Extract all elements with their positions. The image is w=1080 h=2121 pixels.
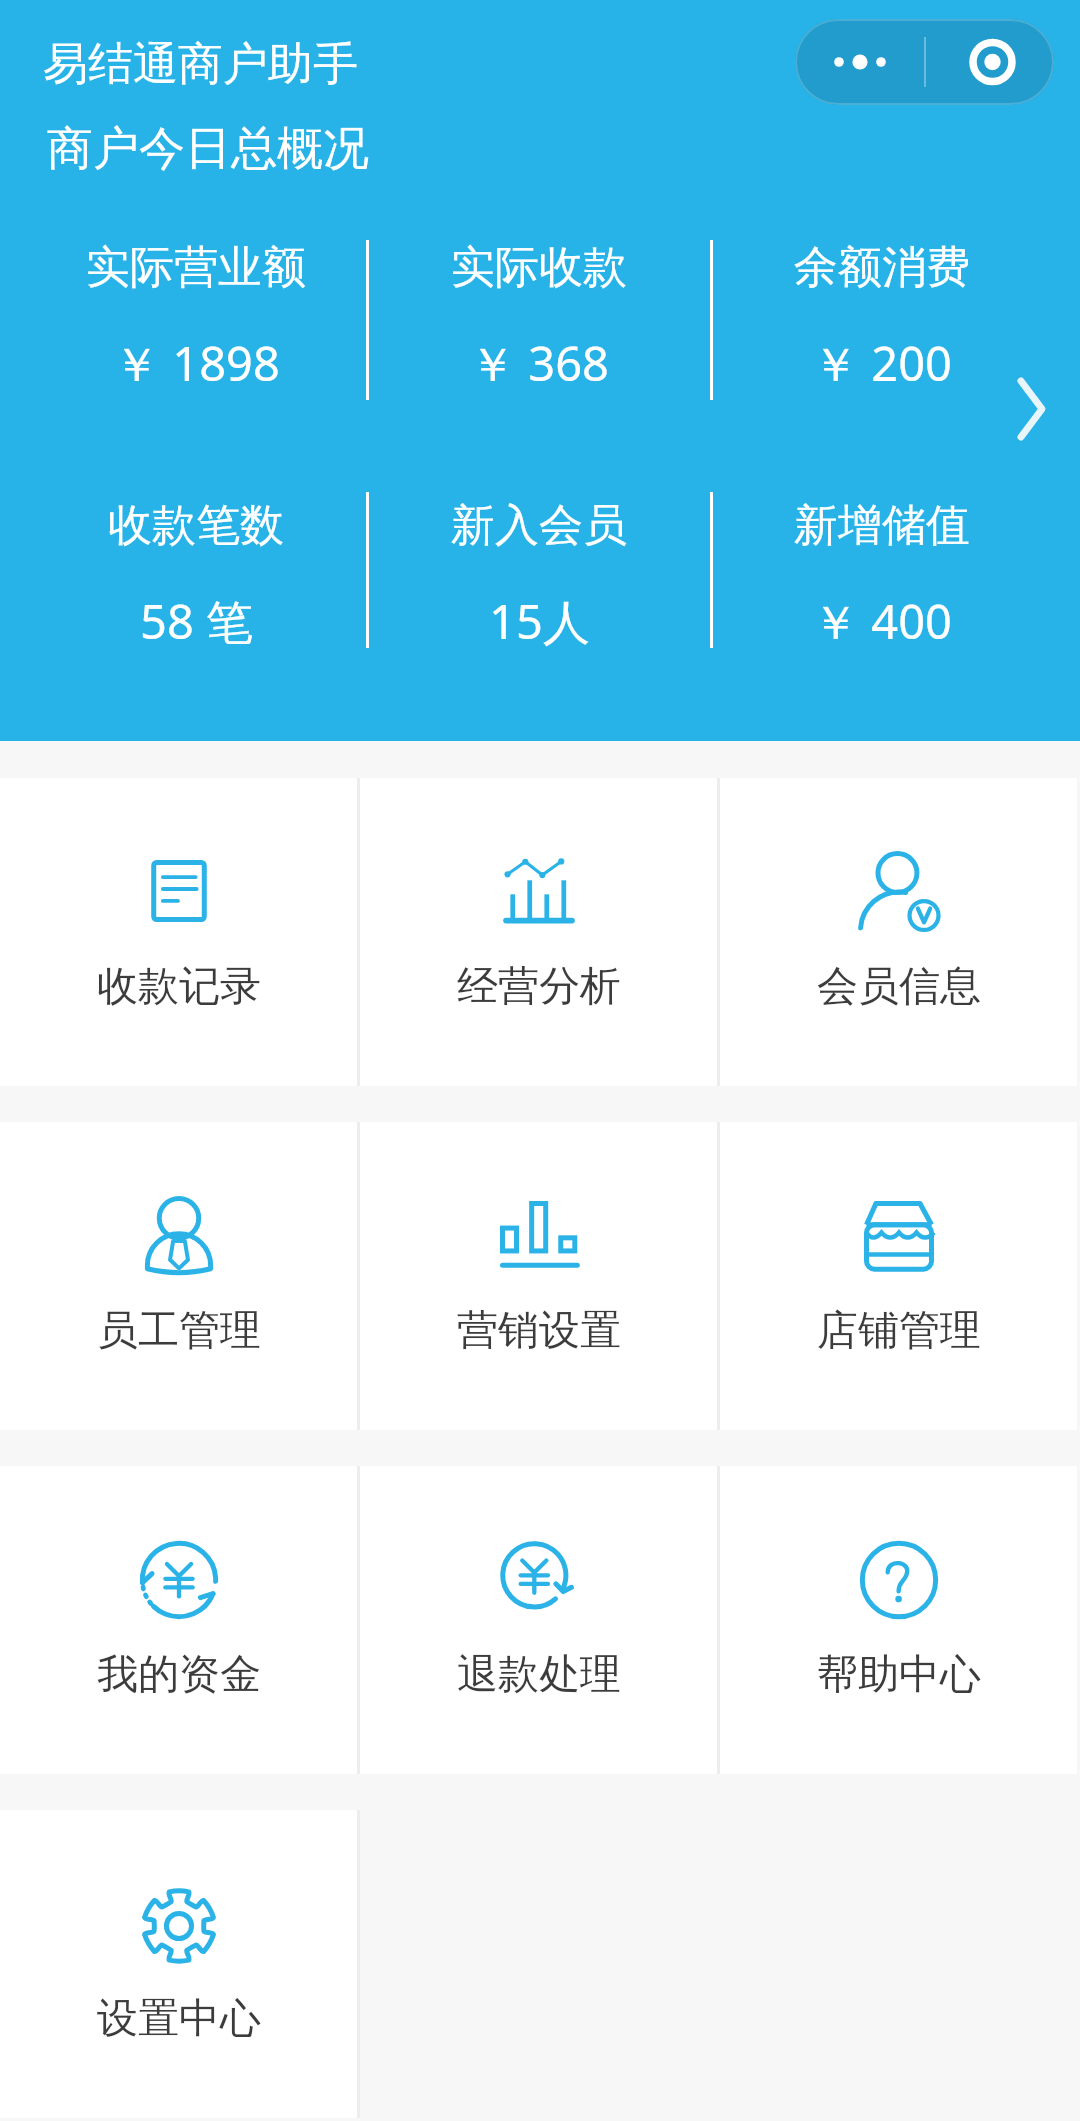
staticText: 新增储值 [794,498,970,553]
staticText: 员工管理 [97,1305,261,1357]
staticText: 我的资金 [97,1649,261,1701]
button[interactable]: 帮助中心 [720,1466,1077,1774]
staticText: 设置中心 [97,1993,261,2045]
staticText: 易结通商户助手 [43,36,358,93]
button[interactable]: 设置中心 [0,1810,357,2118]
staticText: ￥ 400 [812,589,952,653]
button[interactable]: 退款处理 [360,1466,717,1774]
button[interactable]: 员工管理 [0,1122,357,1430]
button[interactable]: 营销设置 [360,1122,717,1430]
staticText: 新入会员 [451,498,627,553]
staticText: 经营分析 [457,961,621,1013]
staticText: 收款笔数 [108,498,284,553]
staticText: 实际收款 [451,240,627,295]
staticText: 店铺管理 [817,1305,981,1357]
button[interactable]: More [1014,375,1050,443]
button[interactable]: 经营分析 [360,778,717,1086]
button[interactable]: 会员信息 [720,778,1077,1086]
staticText: 58 笔 [140,589,253,653]
staticText: ￥ 200 [812,331,952,395]
staticText: 商户今日总概况 [47,120,369,178]
staticText: 营销设置 [457,1305,621,1357]
staticText: 余额消费 [794,240,970,295]
staticText: 退款处理 [457,1649,621,1701]
button[interactable]: Menu [795,19,1054,105]
button[interactable]: 店铺管理 [720,1122,1077,1430]
staticText: ￥ 368 [469,331,609,395]
staticText: 帮助中心 [817,1649,981,1701]
staticText: 15人 [489,589,590,653]
staticText: 会员信息 [817,961,981,1013]
staticText: 实际营业额 [86,240,306,295]
staticText: 收款记录 [97,961,261,1013]
button[interactable]: 我的资金 [0,1466,357,1774]
staticText: ￥ 1898 [113,331,280,395]
button[interactable]: 收款记录 [0,778,357,1086]
